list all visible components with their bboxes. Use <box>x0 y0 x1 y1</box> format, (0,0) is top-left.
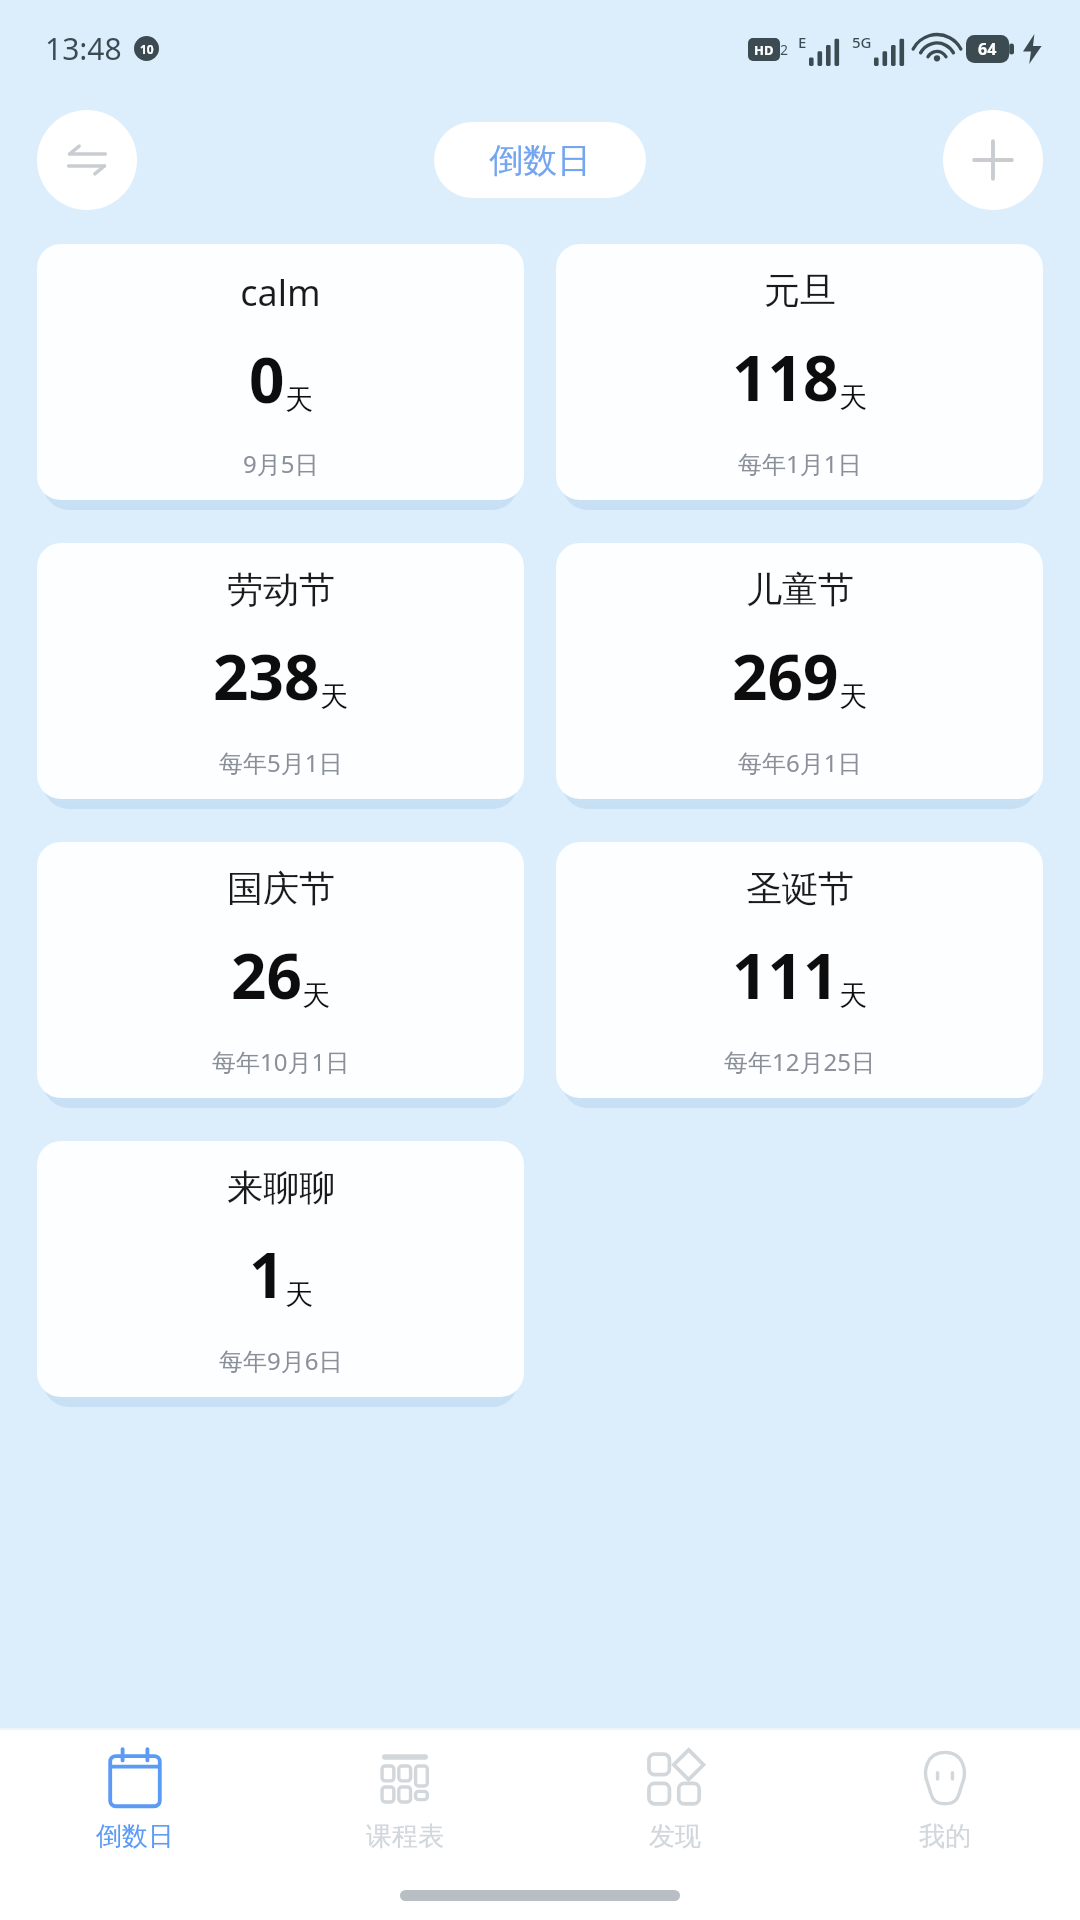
staticText: 天 <box>839 978 867 1013</box>
staticText: 劳动节 <box>227 567 335 612</box>
button[interactable]: 来聊聊 <box>37 1141 524 1397</box>
staticText: 每年10月1日 <box>212 1045 350 1078</box>
staticText: 0 <box>249 337 285 421</box>
staticText: 每年9月6日 <box>219 1344 343 1377</box>
staticText: 每年12月25日 <box>724 1045 875 1078</box>
staticText: 每年5月1日 <box>219 746 343 779</box>
staticText: 我的 <box>919 1820 971 1853</box>
staticText: 64 <box>978 38 997 60</box>
staticText: 2 <box>780 40 789 59</box>
staticText: E <box>798 32 807 52</box>
staticText: 天 <box>839 679 867 714</box>
staticText: 每年6月1日 <box>738 746 862 779</box>
staticText: 天 <box>839 380 867 415</box>
staticText: 1 <box>249 1232 285 1316</box>
staticText: 圣诞节 <box>746 866 854 911</box>
staticText: 5G <box>852 32 872 52</box>
staticText: 111 <box>732 933 839 1017</box>
button[interactable]: 儿童节 <box>556 543 1043 799</box>
staticText: 13:48 <box>45 28 122 69</box>
button[interactable]: 倒数日 <box>434 122 646 198</box>
staticText: 238 <box>213 634 320 718</box>
button[interactable]: 倒数日 <box>0 1730 270 1870</box>
button[interactable]: 劳动节 <box>37 543 524 799</box>
staticText: 倒数日 <box>96 1820 174 1853</box>
staticText: 26 <box>231 933 302 1017</box>
staticText: 天 <box>285 1277 313 1312</box>
staticText: 天 <box>302 978 330 1013</box>
staticText: calm <box>240 268 321 317</box>
staticText: 天 <box>285 382 313 417</box>
staticText: 儿童节 <box>746 567 854 612</box>
staticText: HD <box>754 41 774 59</box>
button[interactable]: Add <box>943 110 1043 210</box>
button[interactable]: 圣诞节 <box>556 842 1043 1098</box>
staticText: 课程表 <box>366 1820 444 1853</box>
button[interactable]: 发现 <box>540 1730 810 1870</box>
staticText: 118 <box>732 335 839 419</box>
staticText: 元旦 <box>764 268 836 313</box>
staticText: 9月5日 <box>243 447 319 480</box>
staticText: 倒数日 <box>489 139 591 182</box>
button[interactable]: 国庆节 <box>37 842 524 1098</box>
button[interactable]: Switch view <box>37 110 137 210</box>
button[interactable]: 元旦 <box>556 244 1043 500</box>
staticText: 国庆节 <box>227 866 335 911</box>
staticText: 10 <box>140 41 154 57</box>
staticText: 天 <box>320 679 348 714</box>
staticText: 269 <box>732 634 839 718</box>
staticText: 发现 <box>649 1820 701 1853</box>
staticText: 来聊聊 <box>227 1165 335 1210</box>
button[interactable]: calm <box>37 244 524 500</box>
button[interactable]: 我的 <box>810 1730 1080 1870</box>
button[interactable]: 课程表 <box>270 1730 540 1870</box>
staticText: 每年1月1日 <box>738 447 862 480</box>
